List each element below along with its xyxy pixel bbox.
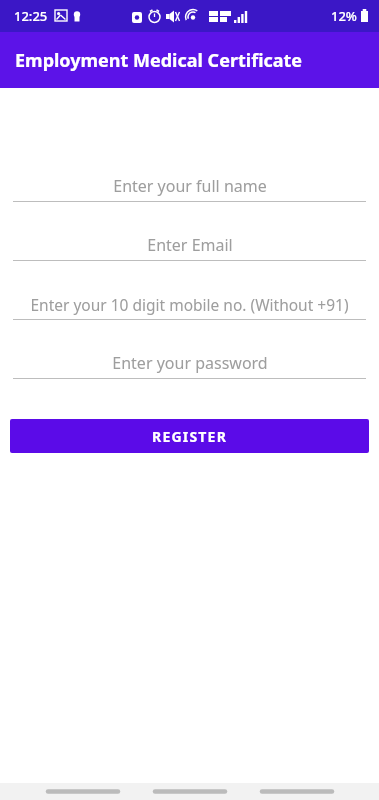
staticText: Enter your password — [112, 352, 268, 374]
staticText: Employment Medical Certificate — [15, 48, 303, 73]
staticText: REGISTER — [152, 427, 228, 446]
button[interactable]: Enter Email — [13, 232, 366, 261]
button[interactable]: Enter your password — [13, 350, 366, 379]
staticText: 12% — [331, 7, 357, 25]
button[interactable]: Enter your full name — [13, 173, 366, 202]
button[interactable]: REGISTER — [10, 419, 369, 453]
button[interactable]: Enter your 10 digit mobile no. (Without … — [13, 291, 366, 320]
staticText: Enter your 10 digit mobile no. (Without … — [30, 294, 349, 315]
staticText: 12:25 — [14, 7, 48, 25]
staticText: Enter Email — [147, 234, 233, 256]
staticText: Enter your full name — [113, 175, 267, 197]
